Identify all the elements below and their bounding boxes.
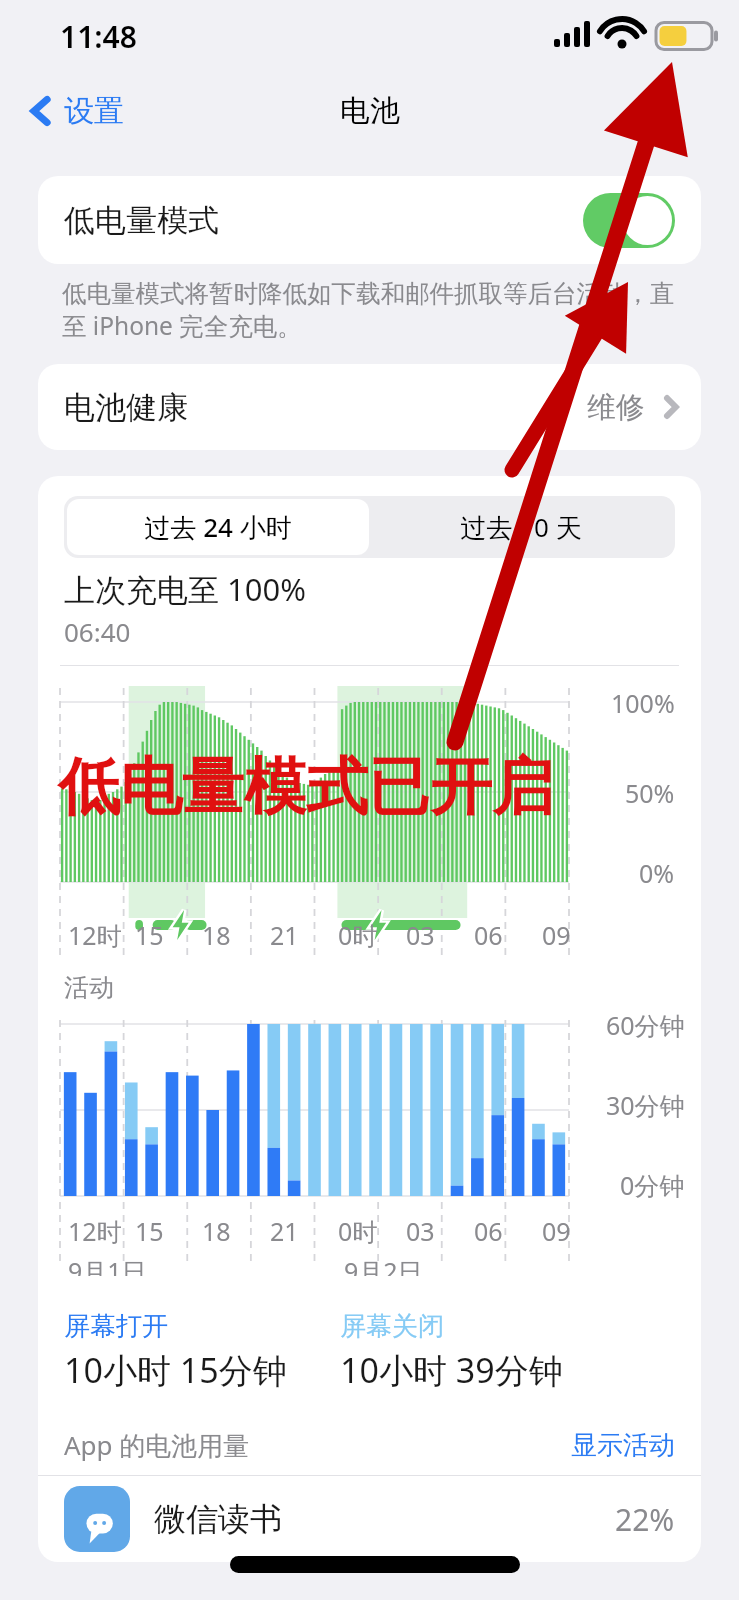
staticText: 60分钟 bbox=[606, 1008, 685, 1042]
staticText: 21 bbox=[270, 918, 299, 952]
staticText: 10小时 15分钟 bbox=[64, 1347, 287, 1393]
staticText: 10小时 39分钟 bbox=[340, 1347, 563, 1393]
button[interactable]: 电池健康 bbox=[38, 364, 701, 450]
staticText: 15 bbox=[135, 918, 164, 952]
staticText: App 的电池用量 bbox=[64, 1427, 250, 1463]
button[interactable]: 设置 bbox=[22, 86, 132, 136]
staticText: 低电量模式将暂时降低如下载和邮件抓取等后台活动，直 bbox=[62, 278, 675, 309]
staticText: 50% bbox=[625, 776, 675, 810]
staticText: 0时 bbox=[338, 918, 378, 952]
staticText: 微信读书 bbox=[154, 1499, 282, 1539]
button[interactable]: 过去 10 天 bbox=[369, 499, 672, 555]
staticText: 12时 bbox=[68, 918, 122, 952]
button[interactable]: 显示活动 bbox=[571, 1429, 675, 1462]
staticText: 9月2日 bbox=[344, 1254, 423, 1276]
staticText: 21 bbox=[270, 1214, 299, 1248]
staticText: 06 bbox=[474, 1214, 503, 1248]
button[interactable]: 低电量模式开关 bbox=[583, 193, 675, 248]
staticText: 18 bbox=[202, 918, 231, 952]
staticText: 06 bbox=[474, 918, 503, 952]
staticText: 15 bbox=[135, 1214, 164, 1248]
staticText: 100% bbox=[611, 686, 675, 720]
staticText: 0% bbox=[639, 856, 675, 890]
staticText: 低电量模式已开启 bbox=[58, 748, 554, 826]
staticText: 活动 bbox=[64, 972, 114, 1003]
staticText: 至 iPhone 完全充电。 bbox=[62, 309, 302, 342]
staticText: 22% bbox=[615, 1499, 675, 1540]
staticText: 12时 bbox=[68, 1214, 122, 1248]
button[interactable]: 过去 24 小时 bbox=[67, 499, 369, 555]
staticText: 设置 bbox=[64, 92, 124, 130]
staticText: 过去 10 天 bbox=[460, 509, 582, 545]
staticText: 电池健康 bbox=[64, 388, 188, 427]
staticText: 03 bbox=[406, 918, 435, 952]
staticText: 上次充电至 100% bbox=[64, 568, 307, 610]
staticText: 屏幕关闭 bbox=[340, 1310, 444, 1343]
staticText: 0时 bbox=[338, 1214, 378, 1248]
staticText: 0分钟 bbox=[620, 1168, 685, 1202]
staticText: 过去 24 小时 bbox=[144, 509, 292, 545]
staticText: 低电量模式 bbox=[64, 201, 219, 240]
staticText: 09 bbox=[542, 918, 571, 952]
staticText: 屏幕打开 bbox=[64, 1310, 168, 1343]
button[interactable]: 微信读书 bbox=[38, 1476, 701, 1562]
staticText: 09 bbox=[542, 1214, 571, 1248]
staticText: 06:40 bbox=[64, 614, 131, 649]
staticText: 维修 bbox=[587, 389, 645, 426]
staticText: 18 bbox=[202, 1214, 231, 1248]
staticText: 11:48 bbox=[60, 16, 137, 57]
staticText: 9月1日 bbox=[68, 1254, 147, 1276]
staticText: 30分钟 bbox=[606, 1088, 685, 1122]
button[interactable]: 低电量模式 bbox=[38, 176, 701, 264]
staticText: 显示活动 bbox=[571, 1429, 675, 1462]
staticText: 03 bbox=[406, 1214, 435, 1248]
staticText: 电池 bbox=[340, 92, 400, 130]
